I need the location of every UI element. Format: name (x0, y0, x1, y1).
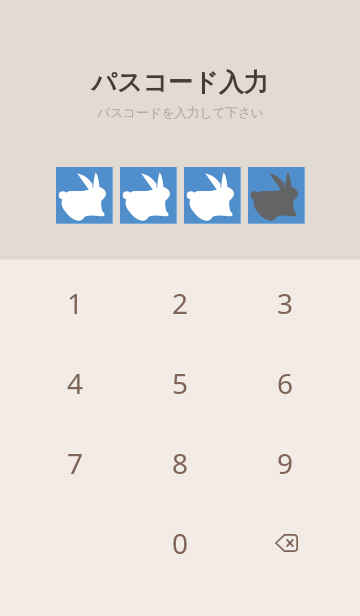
staticText: パスコードを入力して下さい (97, 105, 264, 121)
button[interactable]: Backspace (233, 503, 338, 583)
staticText: パスコード入力 (91, 67, 269, 98)
staticText: 6 (277, 364, 294, 402)
staticText: 5 (172, 364, 189, 402)
button[interactable]: 9 (233, 423, 338, 503)
button[interactable]: 1 (22, 263, 128, 343)
staticText: 3 (277, 284, 294, 322)
button[interactable]: 6 (233, 343, 338, 423)
other: Backspace (274, 534, 298, 552)
staticText: 8 (172, 444, 189, 482)
staticText: 2 (172, 284, 189, 322)
button[interactable]: 0 (128, 503, 233, 583)
staticText: 0 (172, 524, 189, 562)
button[interactable]: 8 (128, 423, 233, 503)
staticText: 1 (67, 284, 84, 322)
button[interactable]: 4 (22, 343, 128, 423)
staticText: 4 (67, 364, 84, 402)
staticText: 7 (67, 444, 84, 482)
staticText: 9 (277, 444, 294, 482)
button[interactable]: 3 (233, 263, 338, 343)
button[interactable]: 5 (128, 343, 233, 423)
button[interactable]: 7 (22, 423, 128, 503)
button[interactable]: 2 (128, 263, 233, 343)
